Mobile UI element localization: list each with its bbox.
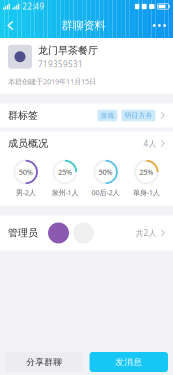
button[interactable]: 分享群聊 — [5, 352, 83, 372]
staticText: 50% — [99, 167, 113, 177]
staticText: 男-2人 — [16, 187, 36, 197]
staticText: 22:49 — [22, 1, 44, 12]
staticText: 共2人 — [135, 227, 156, 238]
staticText: 管理员 — [8, 227, 38, 239]
staticText: 00后-2人 — [92, 187, 120, 197]
button[interactable]: 更多 — [146, 13, 173, 38]
staticText: 25% — [58, 167, 72, 177]
button[interactable]: 成员概况 — [0, 131, 173, 155]
staticText: 单身-1人 — [133, 187, 160, 197]
button[interactable]: 发消息 — [89, 352, 168, 372]
staticText: 719359531 — [38, 59, 83, 69]
staticText: 成员概况 — [8, 137, 48, 150]
staticText: 分享群聊 — [26, 356, 62, 367]
staticText: 明日方舟 — [124, 111, 152, 120]
staticText: 4人 — [143, 138, 156, 149]
staticText: 50% — [19, 167, 33, 177]
staticText: 游戏 — [100, 111, 114, 120]
button[interactable]: 返回 — [0, 13, 21, 38]
button[interactable]: 群标签 — [0, 103, 173, 127]
staticText: 群聊资料 — [61, 18, 105, 33]
staticText: 龙门早茶餐厅 — [38, 44, 98, 57]
staticText: 发消息 — [115, 356, 142, 367]
staticText: 本群创建于2019年11月15日 — [8, 76, 96, 86]
staticText: 泉州-1人 — [51, 187, 78, 197]
staticText: 群标签 — [8, 109, 38, 122]
button[interactable]: 管理员 — [0, 215, 173, 250]
staticText: 25% — [139, 167, 153, 177]
